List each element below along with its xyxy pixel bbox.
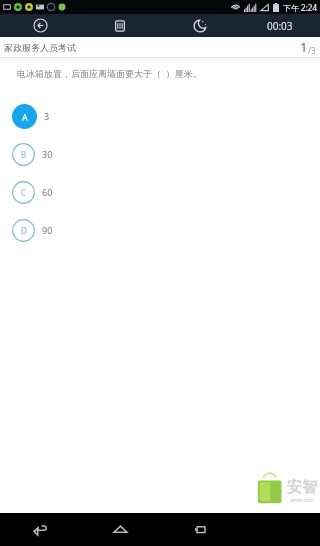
button[interactable]: Timer xyxy=(240,14,320,37)
staticText: anzhi.com xyxy=(290,497,315,504)
staticText: 安智 xyxy=(287,478,317,497)
button[interactable]: B xyxy=(0,135,320,173)
staticText: D xyxy=(21,225,27,236)
staticText: 1 xyxy=(300,38,308,56)
button[interactable]: Notebook xyxy=(80,14,160,37)
staticText: 30 xyxy=(42,148,53,160)
staticText: 下午 2:24 xyxy=(283,2,317,13)
staticText: C xyxy=(21,187,27,198)
staticText: 3 xyxy=(44,110,50,122)
button[interactable]: Recent apps xyxy=(160,513,240,546)
button[interactable]: Home xyxy=(80,513,160,546)
staticText: A xyxy=(22,111,28,123)
button[interactable]: Back xyxy=(0,14,80,37)
button[interactable]: Back xyxy=(0,513,80,546)
button[interactable]: A xyxy=(0,97,320,135)
staticText: B xyxy=(21,149,27,160)
staticText: 00:03 xyxy=(267,19,293,33)
button[interactable]: Night mode xyxy=(160,14,240,37)
staticText: /3 xyxy=(308,45,316,56)
staticText: 电冰箱放置，后面应离墙面要大于（ ）厘米。 xyxy=(17,67,202,79)
staticText: 60 xyxy=(42,186,53,198)
button[interactable]: C xyxy=(0,173,320,211)
staticText: 90 xyxy=(42,224,53,236)
button[interactable]: D xyxy=(0,211,320,249)
staticText: 家政服务人员考试 xyxy=(4,42,76,53)
